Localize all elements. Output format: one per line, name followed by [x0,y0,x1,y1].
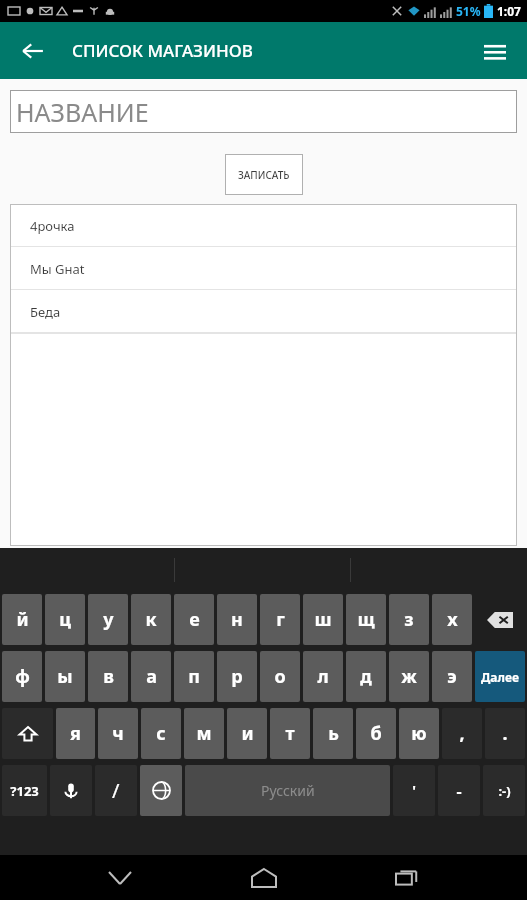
button[interactable]: я [56,708,95,759]
button[interactable]: а [131,651,171,702]
button[interactable]: т [270,708,310,759]
staticText: / [112,777,120,804]
button[interactable]: Русский [185,765,390,816]
staticText: Русский [261,781,315,800]
staticText: д [360,664,372,689]
button[interactable]: в [88,651,128,702]
button[interactable]: Back [97,855,143,900]
staticText: и [241,721,254,746]
staticText: ы [57,664,73,689]
button[interactable]: п [174,651,214,702]
button[interactable]: ЗАПИСАТЬ [225,154,303,195]
staticText: СПИСОК МАГАЗИНОВ [72,39,253,62]
button[interactable]: о [260,651,300,702]
button[interactable]: 4рочка [10,204,517,247]
button[interactable]: х [432,594,472,645]
button[interactable]: щ [346,594,386,645]
button[interactable]: ч [98,708,138,759]
button[interactable]: Далее [475,651,525,702]
button[interactable]: у [88,594,128,645]
staticText: щ [357,607,375,632]
staticText: л [317,664,329,689]
button[interactable]: н [217,594,257,645]
button[interactable]: й [2,594,42,645]
button[interactable]: э [432,651,472,702]
staticText: п [188,664,200,689]
button[interactable]: ш [303,594,343,645]
staticText: ш [314,607,332,632]
staticText: й [16,607,29,632]
button[interactable]: ?123 [2,765,47,816]
staticText: т [285,721,295,746]
button[interactable]: л [303,651,343,702]
button[interactable]: р [217,651,257,702]
button[interactable]: и [227,708,267,759]
staticText: - [456,780,462,802]
button[interactable]: :-) [483,765,525,816]
button[interactable]: Menu [471,27,519,75]
button[interactable]: ь [313,708,353,759]
staticText: я [70,721,81,746]
staticText: , [459,721,465,746]
staticText: э [447,664,457,689]
staticText: ЗАПИСАТЬ [238,168,290,182]
button[interactable]: Back [10,28,56,74]
staticText: м [196,721,212,746]
button[interactable]: Home [241,855,287,900]
staticText: 51% [456,3,481,19]
staticText: ю [411,721,427,746]
staticText: а [146,664,157,689]
button[interactable]: ы [45,651,85,702]
staticText: с [156,721,166,746]
button[interactable]: ж [389,651,429,702]
button[interactable]: ф [2,651,42,702]
button[interactable]: д [346,651,386,702]
staticText: Беда [30,303,61,321]
button[interactable]: с [141,708,181,759]
button[interactable]: Change language [140,765,182,816]
button[interactable]: Backspace [475,594,525,645]
staticText: 4рочка [30,217,75,235]
button[interactable]: м [184,708,224,759]
button[interactable]: е [174,594,214,645]
staticText: ?123 [10,782,39,800]
button[interactable]: ю [399,708,439,759]
staticText: ' [412,781,416,800]
button[interactable]: . [485,708,525,759]
button[interactable]: Voice input [50,765,92,816]
staticText: х [447,607,458,632]
staticText: ф [15,664,30,689]
button[interactable]: Recent apps [384,855,430,900]
staticText: . [502,721,508,746]
staticText: ж [401,664,417,689]
staticText: е [189,607,200,632]
button[interactable]: - [438,765,480,816]
button[interactable]: Беда [10,290,517,333]
staticText: НАЗВАНИЕ [16,95,149,129]
button[interactable]: б [356,708,396,759]
button[interactable]: Shift [2,708,53,759]
staticText: Далее [481,669,519,685]
staticText: б [370,721,382,746]
staticText: у [103,607,114,632]
button[interactable]: к [131,594,171,645]
staticText: р [231,664,243,689]
button[interactable]: ' [393,765,435,816]
button[interactable]: з [389,594,429,645]
staticText: к [145,607,157,632]
button[interactable]: НАЗВАНИЕ [10,90,517,133]
staticText: ч [112,721,124,746]
staticText: г [276,607,285,632]
button[interactable]: Мы Gнat [10,247,517,290]
staticText: 1:07 [497,3,521,19]
staticText: н [231,607,243,632]
button[interactable]: ц [45,594,85,645]
button[interactable]: Slash [95,765,137,816]
button[interactable]: г [260,594,300,645]
button[interactable]: , [442,708,482,759]
staticText: :-) [498,782,511,800]
staticText: ц [59,607,71,632]
